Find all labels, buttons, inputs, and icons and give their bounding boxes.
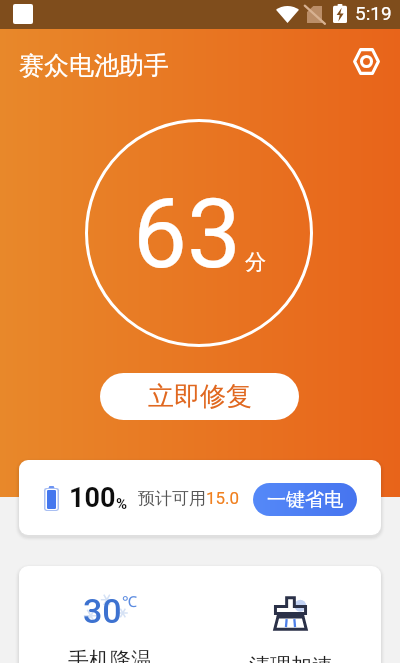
staticText: 分 <box>245 249 266 275</box>
staticText: 立即修复 <box>148 380 252 413</box>
staticText: 手机降温 <box>68 647 152 663</box>
staticText: 赛众电池助手 <box>19 50 169 81</box>
staticText: 30 <box>83 591 122 631</box>
button[interactable]: 30 <box>19 566 200 663</box>
staticText: 清理加速 <box>249 653 333 663</box>
staticText: % <box>116 495 128 513</box>
staticText: 100 <box>69 482 116 514</box>
staticText: 15.0 <box>206 488 240 508</box>
button[interactable]: 一键省电 <box>253 483 357 516</box>
button[interactable]: 立即修复 <box>100 373 299 420</box>
staticText: 一键省电 <box>267 488 343 512</box>
staticText: 预计可用 <box>138 488 206 509</box>
button[interactable]: Settings <box>344 39 388 83</box>
staticText: 5:19 <box>355 2 392 24</box>
staticText: ℃ <box>122 591 137 611</box>
button[interactable]: 6.2G <box>200 566 381 663</box>
staticText: 63 <box>133 178 241 291</box>
